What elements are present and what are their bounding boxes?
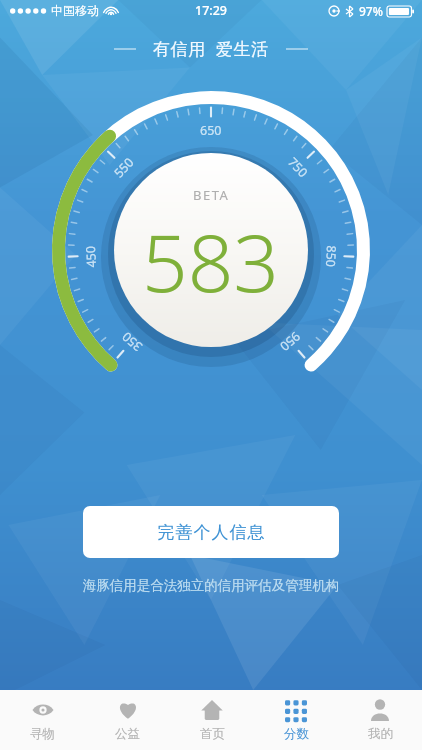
button[interactable]: 完善个人信息 [83,506,339,558]
staticText: 分数 [284,726,309,742]
staticText: 中国移动 [51,3,99,18]
staticText: 完善个人信息 [157,522,265,543]
staticText: 650 [200,122,222,139]
staticText: 首页 [200,726,225,742]
staticText: 寻物 [30,726,55,742]
staticText: 450 [82,245,100,268]
staticText: BETA [193,186,230,204]
button[interactable]: 我的 [338,690,422,750]
button[interactable]: 首页 [170,690,254,750]
button[interactable]: 公益 [85,690,170,750]
button[interactable]: 寻物 [0,690,85,750]
staticText: 17:29 [195,2,228,19]
staticText: 350 [118,328,146,355]
staticText: 950 [276,328,304,355]
staticText: 我的 [368,726,393,742]
staticText: 公益 [115,726,140,742]
staticText: 550 [110,154,138,181]
staticText: 750 [284,154,312,181]
button[interactable]: 分数 [254,690,338,750]
staticText: 海豚信用是合法独立的信用评估及管理机构 [0,577,422,594]
staticText: 有信用 爱生活 [153,37,269,60]
staticText: 97% [359,3,383,19]
staticText: 583 [142,206,280,315]
staticText: 850 [322,245,340,268]
